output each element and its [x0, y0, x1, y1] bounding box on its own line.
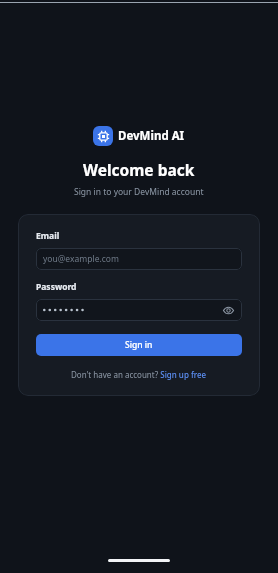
- staticText: Sign in to your DevMind account: [74, 186, 204, 198]
- button[interactable]: Sign in: [36, 334, 242, 356]
- staticText: Sign in: [125, 339, 153, 351]
- staticText: Password: [36, 281, 77, 293]
- staticText: you@example.com: [43, 253, 119, 265]
- staticText: Don't have an account? Sign up free: [71, 369, 207, 380]
- button[interactable]: DevMind AI: [93, 126, 185, 146]
- button[interactable]: you@example.com: [36, 248, 242, 270]
- staticText: Welcome back: [83, 159, 195, 180]
- staticText: DevMind AI: [118, 128, 185, 144]
- button[interactable]: Don't have an account? Sign up free: [71, 369, 207, 380]
- button[interactable]: Show password: [36, 299, 242, 321]
- staticText: Email: [36, 230, 60, 242]
- button[interactable]: Show password: [221, 303, 235, 317]
